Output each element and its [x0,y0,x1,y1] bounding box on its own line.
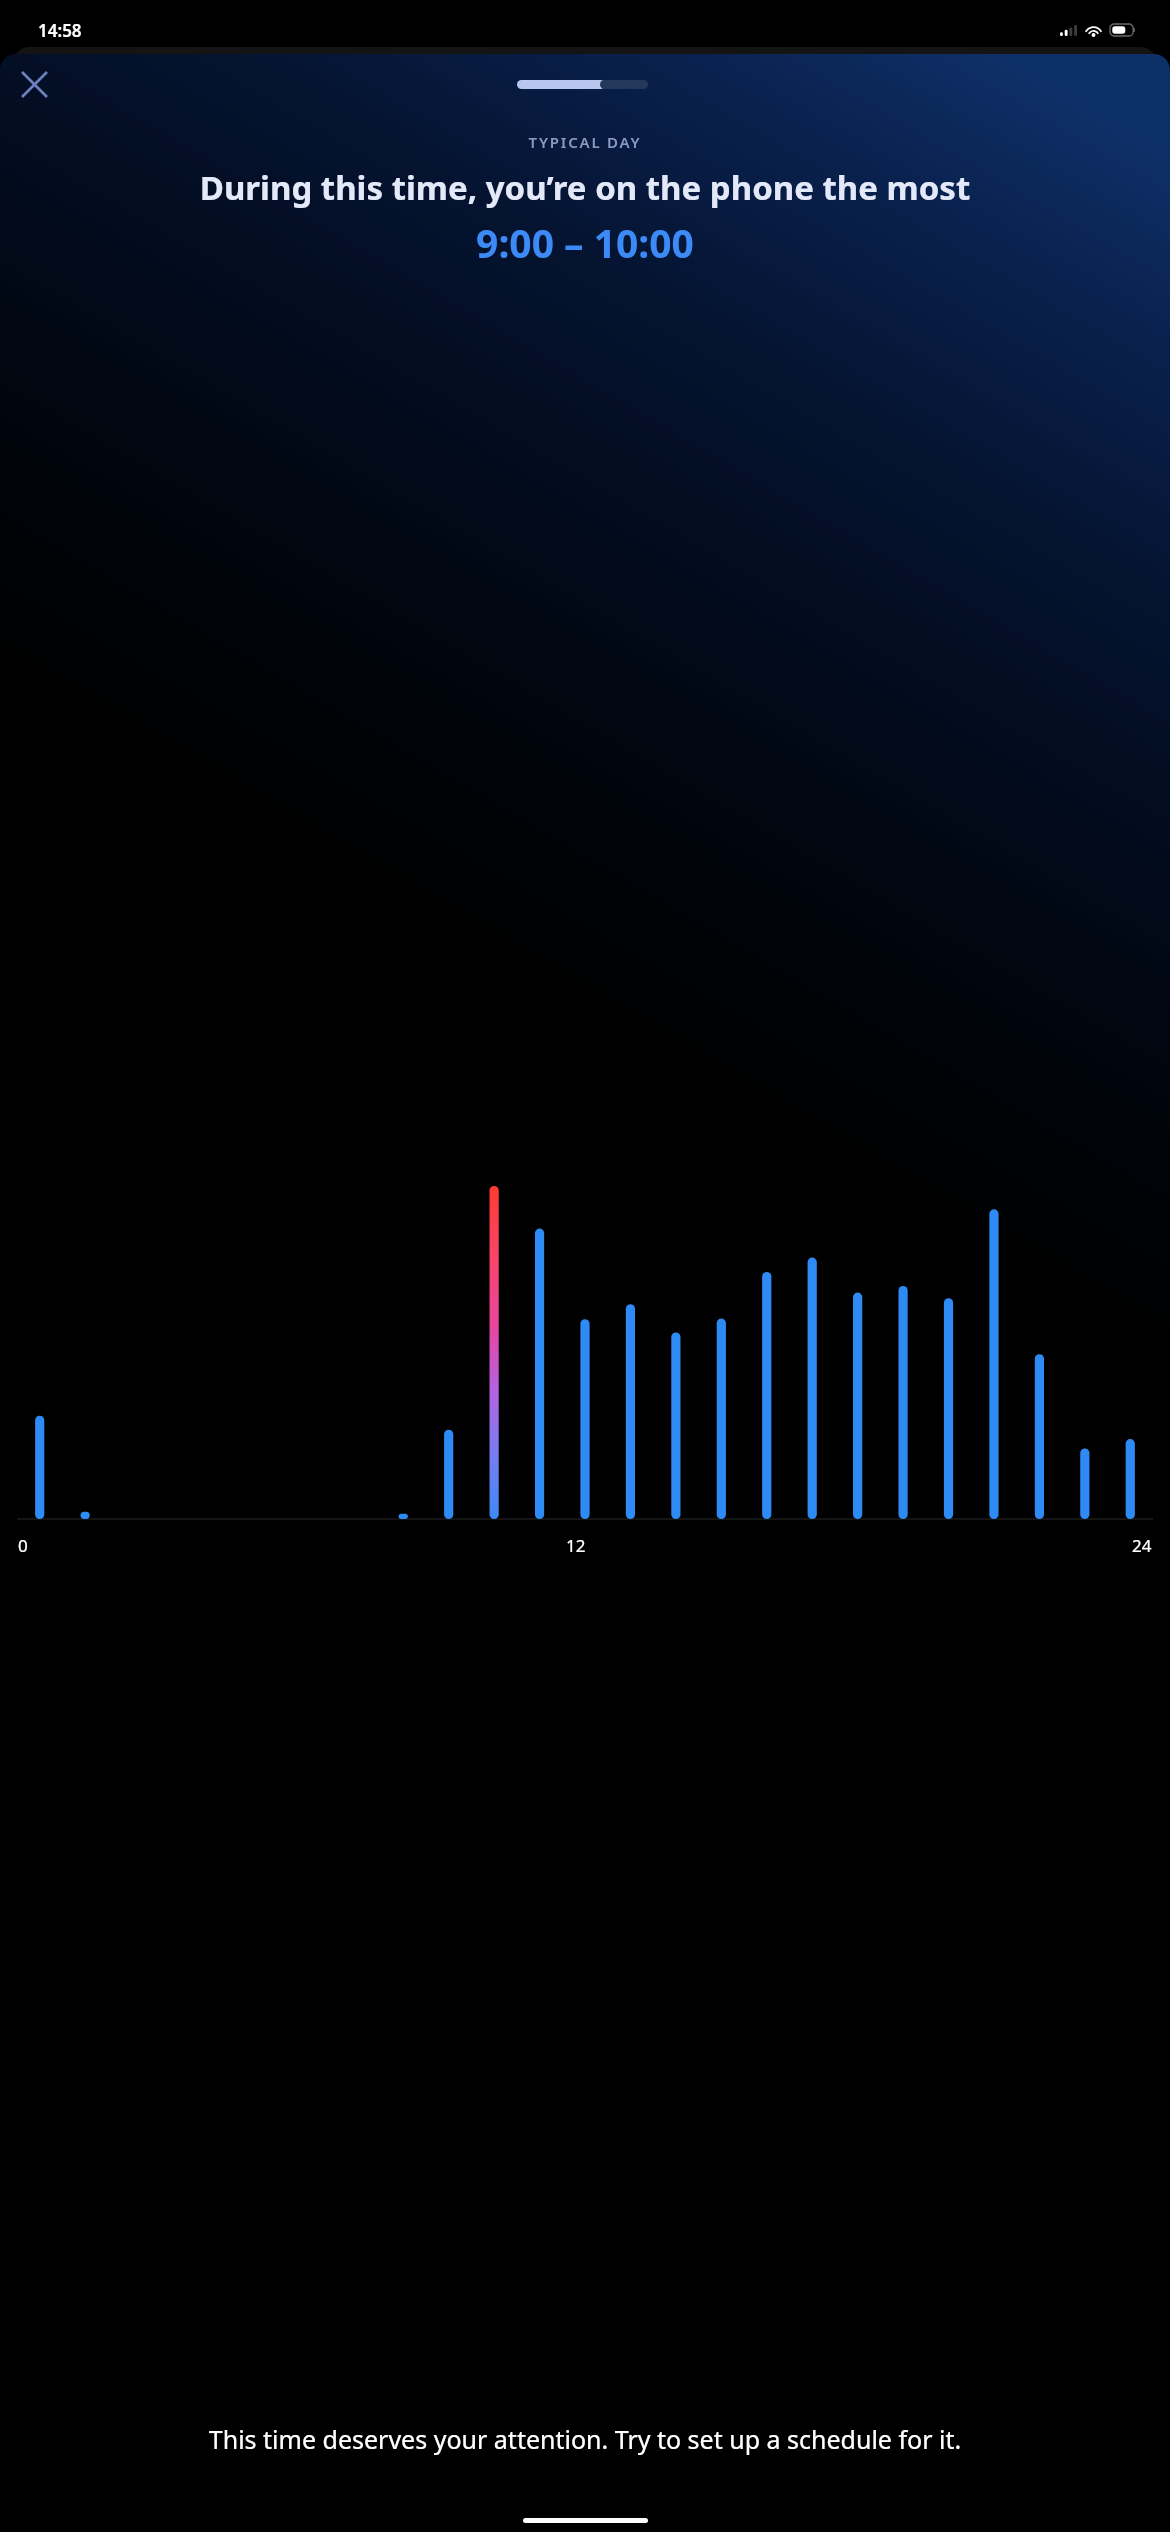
staticText: This time deserves your attention. Try t… [16,2422,1154,2456]
staticText: 12 [566,1534,586,1557]
button[interactable]: Close [6,56,62,112]
staticText: 24 [1132,1534,1152,1557]
staticText: TYPICAL DAY [0,132,1170,152]
staticText: 9:00 – 10:00 [0,216,1170,269]
staticText: 0 [18,1534,28,1557]
staticText: 14:58 [38,19,82,42]
staticText: During this time, you’re on the phone th… [16,165,1154,210]
